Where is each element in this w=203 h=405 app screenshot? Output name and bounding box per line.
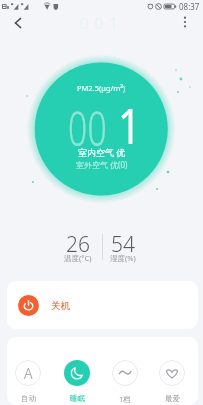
staticText: 关机 bbox=[51, 300, 70, 312]
staticText: 08:37 bbox=[179, 1, 200, 12]
button[interactable]: 1档 bbox=[108, 360, 142, 404]
button[interactable]: 关机 bbox=[7, 281, 198, 329]
staticText: 室内空气 优 bbox=[78, 146, 126, 158]
button[interactable]: 睡眠 bbox=[60, 360, 94, 403]
button[interactable]: 最爱 bbox=[155, 360, 189, 403]
staticText: 54 bbox=[111, 230, 135, 259]
button[interactable]: More options bbox=[167, 6, 203, 38]
button[interactable]: A bbox=[11, 360, 45, 403]
staticText: 1 bbox=[118, 91, 141, 159]
staticText: 湿度(%) bbox=[110, 253, 136, 263]
staticText: 自动 bbox=[21, 394, 36, 403]
staticText: PM2.5(μg/m³) bbox=[77, 83, 126, 93]
staticText: 睡眠 bbox=[70, 394, 85, 403]
staticText: 1档 bbox=[119, 394, 131, 404]
button[interactable]: Back bbox=[0, 7, 36, 39]
staticText: 最爱 bbox=[165, 394, 180, 403]
staticText: 室外空气 优(0) bbox=[76, 159, 128, 170]
staticText: 00 bbox=[68, 95, 107, 160]
staticText: 26 bbox=[66, 230, 90, 259]
staticText: 001 bbox=[80, 13, 124, 33]
staticText: 温度(°C) bbox=[64, 253, 92, 263]
staticText: A bbox=[24, 364, 33, 383]
